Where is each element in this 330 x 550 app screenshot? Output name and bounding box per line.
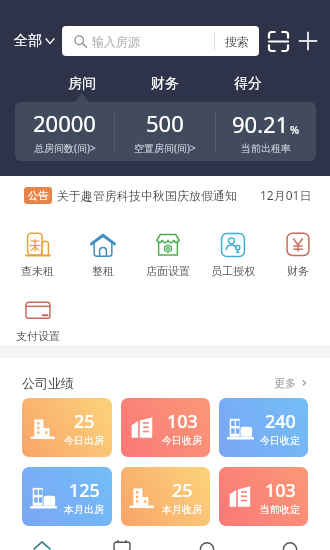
button[interactable]: 我的	[268, 531, 312, 550]
button[interactable]: 20000	[15, 102, 114, 161]
button[interactable]: 得分	[224, 73, 272, 95]
button[interactable]: 店面设置	[135, 214, 200, 279]
staticText: 整租	[92, 264, 114, 278]
button[interactable]: 公告	[0, 176, 330, 214]
staticText: 103	[167, 409, 198, 434]
button[interactable]: 25	[22, 398, 112, 457]
button[interactable]: 整租	[70, 214, 135, 279]
staticText: 500	[146, 108, 184, 138]
staticText: 全部	[14, 32, 42, 50]
button[interactable]: 员工授权	[200, 214, 265, 279]
button[interactable]: 103	[121, 398, 210, 457]
staticText: 今日出房	[64, 434, 104, 447]
staticText: 本月收房	[162, 503, 202, 516]
staticText: 公司业绩	[22, 375, 74, 391]
button[interactable]: 支付设置	[5, 279, 70, 344]
staticText: 240	[265, 409, 296, 434]
button[interactable]: 消息	[185, 531, 229, 550]
staticText: 房间	[68, 75, 96, 93]
button[interactable]: 500	[115, 102, 215, 161]
staticText: 20000	[33, 108, 96, 138]
staticText: 公告	[28, 189, 48, 202]
staticText: 25	[172, 478, 193, 503]
button[interactable]: 财务	[265, 214, 330, 279]
staticText: 总房间数(间)>	[34, 141, 96, 155]
staticText: 支付设置	[16, 329, 60, 343]
button[interactable]: 扫一扫	[265, 28, 291, 54]
staticText: 输入房源	[92, 34, 140, 49]
staticText: 本月出房	[64, 503, 104, 516]
staticText: 今日收房	[162, 434, 202, 447]
staticText: 搜索	[225, 34, 249, 49]
staticText: 更多	[274, 376, 296, 390]
button[interactable]: 添加	[295, 28, 321, 54]
staticText: 当前收定	[260, 503, 300, 516]
button[interactable]: 25	[121, 467, 210, 526]
staticText: 25	[74, 409, 95, 434]
staticText: 员工授权	[211, 264, 255, 278]
button[interactable]: 查未租	[5, 214, 70, 279]
staticText: 空置房间(间)>	[134, 141, 196, 155]
staticText: 财务	[151, 75, 179, 93]
staticText: 关于趣管房科技中秋国庆放假通知	[57, 188, 237, 203]
staticText: 店面设置	[146, 264, 190, 278]
button[interactable]: 125	[22, 467, 112, 526]
button[interactable]: 日历	[100, 531, 144, 550]
button[interactable]: 输入房源	[62, 26, 259, 56]
button[interactable]: 103	[219, 467, 308, 526]
button[interactable]: 更多	[274, 376, 308, 390]
staticText: 得分	[234, 75, 262, 93]
button[interactable]: 全部	[14, 26, 54, 56]
staticText: 12月01日	[260, 187, 312, 203]
button[interactable]: 90.21	[216, 102, 316, 161]
staticText: %	[290, 122, 300, 137]
staticText: 查未租	[21, 264, 54, 278]
button[interactable]: 首页	[20, 531, 64, 550]
staticText: 90.21	[232, 109, 289, 139]
staticText: 当前出租率	[241, 142, 291, 155]
button[interactable]: 240	[219, 398, 308, 457]
staticText: 今日收定	[260, 434, 300, 447]
button[interactable]: 搜索	[215, 26, 259, 56]
staticText: 财务	[287, 264, 309, 278]
staticText: 125	[69, 478, 100, 503]
button[interactable]: 财务	[141, 73, 189, 95]
button[interactable]: 房间	[58, 73, 106, 95]
staticText: 103	[265, 478, 296, 503]
